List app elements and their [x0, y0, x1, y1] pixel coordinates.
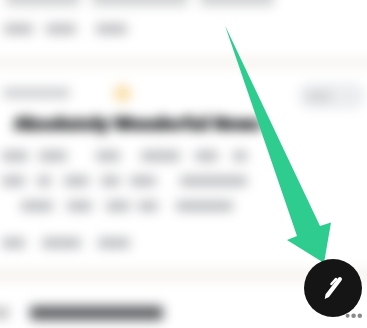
button[interactable] [298, 83, 365, 109]
button[interactable]: Compose post [304, 259, 362, 317]
staticText: Absolutely Wonderful News [14, 111, 263, 136]
staticText: Absolutely Wonderful News [13, 111, 262, 136]
staticText: Absolutely Wonderful News [15, 111, 264, 136]
